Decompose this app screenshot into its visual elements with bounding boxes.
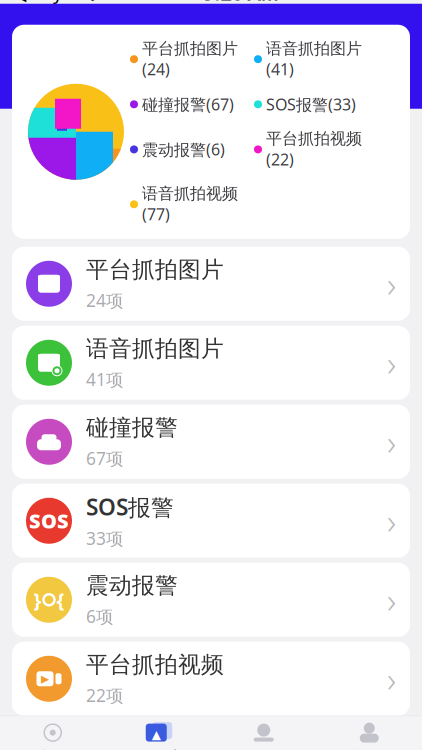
- button[interactable]: ▶: [12, 642, 410, 716]
- staticText: 平台抓拍视频(22): [266, 129, 362, 170]
- staticText: ›: [387, 577, 396, 623]
- staticText: 语音抓拍图片(41): [266, 39, 362, 80]
- staticText: ◀ miyan: [12, 0, 85, 5]
- staticText: ›: [387, 261, 396, 307]
- staticText: {: [56, 586, 64, 613]
- staticText: ›: [387, 498, 396, 544]
- staticText: 33项: [86, 527, 123, 550]
- staticText: ◗: [90, 0, 99, 3]
- staticText: 9:26 AM: [203, 0, 279, 6]
- staticText: SOS报警: [86, 492, 174, 522]
- staticText: ▶: [41, 673, 49, 685]
- staticText: 语音抓拍视频(77): [142, 184, 238, 225]
- button[interactable]: 我的: [316, 716, 422, 750]
- staticText: 6项: [86, 605, 113, 628]
- staticText: ▲: [152, 728, 161, 741]
- button[interactable]: 平台抓拍图片: [12, 247, 410, 321]
- staticText: 媒体库: [133, 748, 184, 750]
- staticText: 67项: [86, 447, 123, 470]
- button[interactable]: SOS: [12, 484, 410, 558]
- staticText: 碰撞报警(67): [142, 94, 234, 115]
- staticText: SOS报警(33): [266, 94, 356, 115]
- button[interactable]: 直播: [0, 716, 105, 750]
- staticText: ›: [387, 656, 396, 702]
- button[interactable]: 媒体库: [105, 716, 211, 750]
- staticText: SOS: [29, 507, 69, 534]
- staticText: 平台抓拍视频: [86, 651, 224, 679]
- staticText: 平台抓拍图片: [86, 256, 224, 284]
- button[interactable]: 行程: [211, 716, 316, 750]
- staticText: 碰撞报警: [86, 414, 178, 442]
- staticText: 41项: [86, 368, 123, 391]
- staticText: ›: [387, 419, 396, 465]
- button[interactable]: }: [12, 563, 410, 637]
- staticText: 语音抓拍图片: [86, 335, 224, 363]
- staticText: ›: [387, 340, 396, 386]
- staticText: 震动报警: [86, 572, 178, 600]
- staticText: 24项: [86, 289, 123, 312]
- staticText: 震动报警(6): [142, 139, 225, 160]
- button[interactable]: 语音抓拍图片: [12, 326, 410, 400]
- staticText: 22项: [86, 684, 123, 707]
- staticText: 平台抓拍图片(24): [142, 39, 238, 80]
- staticText: }: [33, 586, 41, 613]
- button[interactable]: 碰撞报警: [12, 405, 410, 479]
